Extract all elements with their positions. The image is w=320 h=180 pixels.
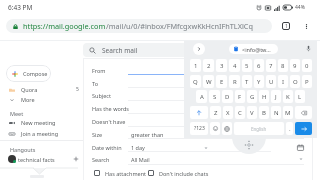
staticText: G <box>250 93 255 101</box>
staticText: 7 <box>269 62 273 70</box>
button[interactable]: C <box>235 106 245 119</box>
button[interactable]: technical facts <box>0 153 83 165</box>
button[interactable]: New meeting <box>0 117 83 128</box>
button[interactable]: Tabs <box>282 22 290 30</box>
staticText: 2 <box>207 62 211 70</box>
button[interactable]: H <box>259 90 269 103</box>
button[interactable]: Don't include chats <box>148 169 209 177</box>
button[interactable]: 9 <box>290 59 300 72</box>
button[interactable]: Join a meeting <box>0 128 83 139</box>
staticText: Search mail <box>102 46 138 55</box>
button[interactable]: 2 <box>203 59 214 72</box>
button[interactable]: L <box>295 90 305 103</box>
button[interactable]: . <box>286 122 293 135</box>
staticText: R <box>233 78 237 86</box>
button[interactable]: B <box>259 106 269 119</box>
button[interactable]: Enter <box>295 122 312 135</box>
staticText: Meet <box>10 110 24 117</box>
staticText: greater than <box>131 131 164 138</box>
staticText: 6:43 PM <box>8 3 33 12</box>
button[interactable]: I <box>278 75 288 88</box>
button[interactable]: A <box>196 90 207 103</box>
button[interactable]: Expand toolbar <box>193 43 205 55</box>
staticText: https://mail.google.com <box>23 21 106 31</box>
button[interactable]: Search mail <box>83 43 312 57</box>
button[interactable]: T <box>242 75 252 88</box>
button[interactable]: X <box>223 106 233 119</box>
button[interactable]: W <box>203 75 214 88</box>
staticText: P <box>305 78 309 86</box>
button[interactable]: O <box>290 75 300 88</box>
button[interactable]: F <box>235 90 245 103</box>
staticText: U <box>269 78 274 86</box>
button[interactable]: ?123 <box>190 122 208 135</box>
button[interactable]: E <box>216 75 227 88</box>
staticText: To <box>92 80 99 87</box>
button[interactable]: Emoji <box>210 122 220 135</box>
button[interactable]: Backspace <box>295 106 312 119</box>
button[interactable]: 0 <box>302 59 312 72</box>
staticText: S <box>213 93 217 101</box>
button[interactable]: More options <box>301 21 311 31</box>
button[interactable]: J <box>271 90 281 103</box>
staticText: Doesn't have <box>92 118 126 125</box>
staticText: 8 <box>281 62 285 70</box>
button[interactable]: 3 <box>216 59 227 72</box>
button[interactable]: 8 <box>278 59 288 72</box>
button[interactable]: Y <box>254 75 264 88</box>
button[interactable]: N <box>271 106 281 119</box>
button[interactable]: S <box>209 90 220 103</box>
button[interactable]: G <box>247 90 257 103</box>
button[interactable]: Shift <box>190 106 208 119</box>
button[interactable]: English <box>234 122 284 135</box>
button[interactable]: U <box>266 75 276 88</box>
staticText: technical facts <box>18 156 55 163</box>
button[interactable]: D <box>222 90 233 103</box>
staticText: Has attachment <box>105 170 147 177</box>
button[interactable]: Q <box>190 75 201 88</box>
button[interactable]: 4 <box>229 59 240 72</box>
button[interactable]: 1 <box>190 59 201 72</box>
staticText: Don't include chats <box>159 170 209 177</box>
button[interactable]: Z <box>210 106 221 119</box>
button[interactable]: Voice input <box>303 43 314 54</box>
staticText: English <box>251 126 267 132</box>
button[interactable]: Has attachment <box>94 169 147 177</box>
staticText: <info@tw... <box>242 46 271 53</box>
staticText: Q <box>193 78 198 86</box>
button[interactable]: Move keyboard <box>232 137 266 154</box>
staticText: J <box>275 93 277 101</box>
button[interactable]: <info@tw... <box>229 44 278 54</box>
staticText: 9 <box>293 62 297 70</box>
staticText: F <box>238 93 242 101</box>
staticText: V <box>250 109 254 117</box>
button[interactable]: R <box>229 75 240 88</box>
button[interactable]: Change language <box>222 122 232 135</box>
button[interactable]: V <box>247 106 257 119</box>
button[interactable]: P <box>302 75 312 88</box>
staticText: N <box>274 109 279 117</box>
button[interactable]: 6 <box>254 59 264 72</box>
button[interactable]: K <box>283 90 293 103</box>
staticText: Subject <box>92 92 111 99</box>
button[interactable]: More <box>0 94 83 105</box>
staticText: . <box>289 125 291 133</box>
staticText: 3 <box>220 62 224 70</box>
staticText: D <box>225 93 230 101</box>
button[interactable]: 5 <box>242 59 252 72</box>
staticText: Quora <box>21 86 38 93</box>
staticText: 1 <box>285 23 288 30</box>
staticText: C <box>238 109 242 117</box>
button[interactable]: https://mail.google.com <box>6 19 272 33</box>
button[interactable]: Quora <box>0 84 83 95</box>
button[interactable]: Compose <box>6 65 51 82</box>
staticText: E <box>220 78 224 86</box>
staticText: B <box>262 109 266 117</box>
staticText: 5 <box>245 62 249 70</box>
staticText: Hangouts <box>10 146 36 153</box>
staticText: Has the words <box>92 105 129 112</box>
staticText: All Mail <box>131 156 150 163</box>
button[interactable]: M <box>283 106 293 119</box>
button[interactable]: 7 <box>266 59 276 72</box>
